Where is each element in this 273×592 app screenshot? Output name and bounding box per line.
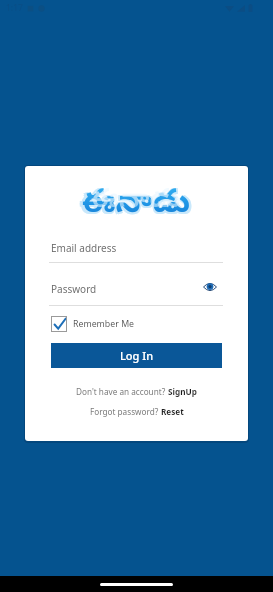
- staticText: Reset: [161, 406, 184, 417]
- button[interactable]: Remember Me: [51, 315, 135, 333]
- staticText: ఈనాడు: [81, 183, 193, 214]
- staticText: SignUp: [168, 386, 197, 397]
- staticText: Remember Me: [73, 318, 135, 330]
- staticText: Log In: [120, 348, 154, 363]
- button[interactable]: SignUp: [168, 386, 197, 397]
- button[interactable]: Log In: [51, 343, 222, 368]
- staticText: Don't have an account?: [76, 386, 168, 397]
- button[interactable]: Email address: [49, 235, 223, 263]
- staticText: ఈనాడు: [91, 184, 181, 215]
- staticText: ఈనాడు: [81, 185, 193, 216]
- staticText: Forgot password?: [90, 406, 161, 417]
- staticText: ఈనాడు: [79, 183, 191, 214]
- staticText: ఈనాడు: [82, 184, 191, 215]
- staticText: ఈనాడు: [79, 185, 191, 216]
- staticText: Password: [51, 282, 97, 296]
- button[interactable]: Show password: [202, 279, 218, 295]
- staticText: Email address: [51, 241, 117, 255]
- button[interactable]: Reset: [161, 406, 184, 417]
- button[interactable]: Password: [49, 278, 223, 306]
